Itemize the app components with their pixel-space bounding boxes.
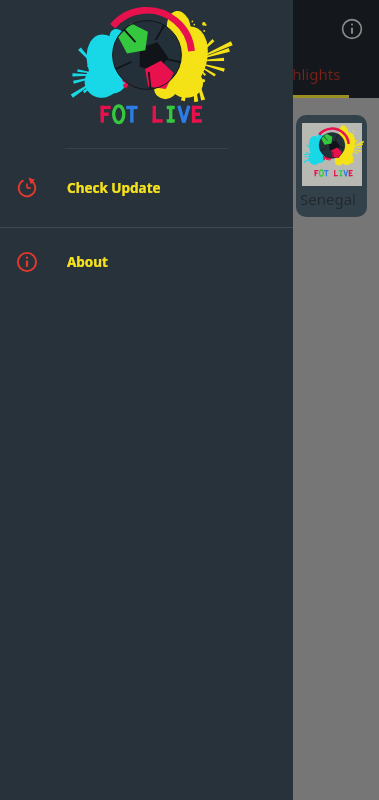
staticText: Highlights — [268, 64, 341, 84]
button[interactable]: Senegal — [296, 115, 367, 217]
button[interactable]: Info — [333, 10, 371, 48]
button[interactable]: About — [0, 228, 293, 296]
button[interactable]: Check Update — [0, 149, 293, 227]
staticText: Check Update — [67, 179, 161, 197]
staticText: About — [67, 253, 108, 271]
staticText: Senegal — [300, 189, 356, 209]
